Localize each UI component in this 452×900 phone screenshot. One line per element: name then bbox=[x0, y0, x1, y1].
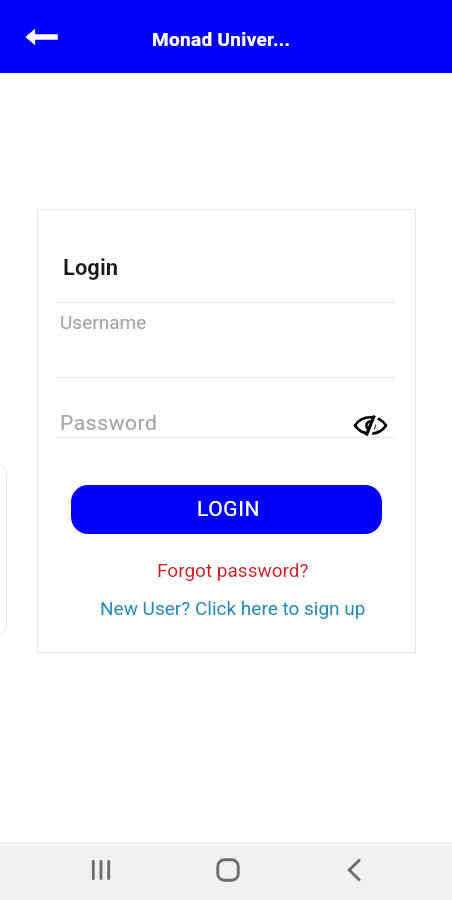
staticText: Forgot password? bbox=[157, 559, 309, 581]
button[interactable]: Home bbox=[204, 846, 252, 894]
staticText: Username bbox=[60, 311, 147, 333]
staticText: Password bbox=[60, 411, 158, 436]
button[interactable]: Back bbox=[14, 14, 60, 60]
button[interactable]: Username bbox=[56, 303, 395, 376]
button[interactable]: Back bbox=[330, 846, 378, 894]
button[interactable]: New User? Click here to sign up bbox=[43, 595, 422, 621]
button[interactable]: LOGIN bbox=[71, 485, 382, 534]
staticText: Login bbox=[63, 255, 119, 281]
button[interactable]: Recents bbox=[77, 846, 125, 894]
button[interactable]: Forgot password? bbox=[43, 557, 422, 583]
button[interactable]: Password bbox=[56, 378, 395, 437]
staticText: New User? Click here to sign up bbox=[100, 597, 366, 619]
staticText: Monad Univer... bbox=[152, 28, 291, 50]
button[interactable]: Show password bbox=[355, 410, 386, 441]
staticText: LOGIN bbox=[197, 497, 261, 522]
